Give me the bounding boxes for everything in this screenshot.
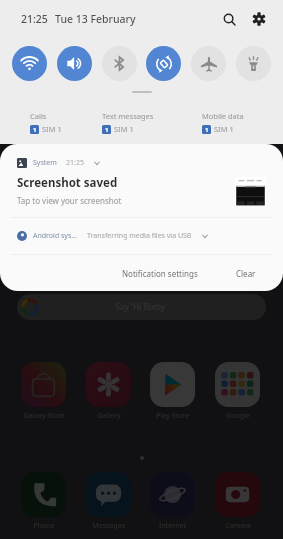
staticText: Play Store — [156, 411, 189, 421]
button[interactable]: Galaxy Store — [21, 362, 66, 407]
staticText: Messages — [92, 521, 125, 531]
staticText: Screenshot saved — [17, 175, 118, 191]
staticText: SIM 1 — [114, 124, 134, 134]
staticText: Transferring media files via USB — [87, 231, 192, 241]
staticText: 21:25 — [21, 12, 48, 26]
button[interactable]: Airplane mode — [191, 46, 226, 81]
staticText: Tap to view your screenshot — [17, 195, 122, 206]
staticText: Mobile data — [202, 111, 244, 121]
staticText: Notification settings — [122, 268, 198, 279]
button[interactable]: Clear — [231, 264, 261, 283]
staticText: 1 — [205, 126, 209, 134]
staticText: Calls — [30, 111, 47, 121]
button[interactable]: System — [0, 144, 283, 217]
button[interactable]: Say 'Hi Bixby' — [17, 294, 266, 320]
staticText: Android sys… — [33, 231, 77, 241]
staticText: Text messages — [102, 111, 154, 121]
button[interactable]: Internet — [150, 472, 195, 517]
staticText: Tue 13 February — [55, 12, 136, 26]
staticText: 1 — [33, 126, 37, 134]
staticText: Gallery — [97, 411, 121, 421]
button[interactable]: Settings — [247, 7, 271, 31]
button[interactable]: Gallery — [86, 362, 131, 407]
staticText: Internet — [159, 521, 186, 531]
staticText: SIM 1 — [214, 124, 234, 134]
button[interactable]: Phone — [21, 472, 66, 517]
staticText: Google — [226, 411, 250, 421]
staticText: 21:25 — [66, 158, 84, 168]
button[interactable]: Camera — [215, 472, 260, 517]
button[interactable]: Wi-Fi — [12, 46, 47, 81]
staticText: Galaxy Store — [23, 411, 65, 421]
button[interactable]: Play Store — [150, 362, 195, 407]
button[interactable]: Messages — [86, 472, 131, 517]
button[interactable]: Google — [215, 362, 260, 407]
button[interactable]: Android sys… — [0, 218, 283, 254]
staticText: Camera — [225, 521, 251, 531]
button[interactable]: Auto rotate — [146, 46, 181, 81]
button[interactable]: Text messages — [102, 111, 202, 134]
button[interactable]: Calls — [30, 111, 102, 134]
staticText: Say 'Hi Bixby' — [115, 301, 168, 313]
button[interactable]: Mobile data — [202, 111, 277, 134]
button[interactable]: Flashlight — [236, 46, 271, 81]
staticText: Clear — [236, 268, 256, 279]
button[interactable]: Sound — [57, 46, 92, 81]
staticText: Phone — [33, 521, 55, 531]
staticText: System — [33, 158, 57, 168]
staticText: 1 — [105, 126, 109, 134]
button[interactable]: Bluetooth — [102, 46, 137, 81]
button[interactable]: Search — [217, 7, 241, 31]
staticText: SIM 1 — [42, 124, 62, 134]
button[interactable]: Notification settings — [117, 264, 203, 283]
